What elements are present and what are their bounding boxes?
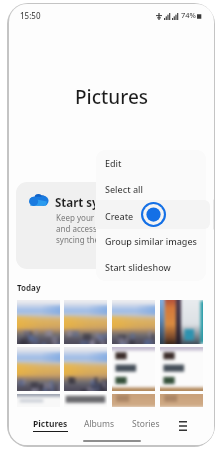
button[interactable]: Group similar images	[96, 228, 206, 254]
button[interactable]: Photo 8	[160, 347, 203, 391]
staticText: Start slideshow	[105, 261, 171, 273]
button[interactable]: Photo 2	[64, 300, 107, 344]
staticText: Pictures	[9, 84, 214, 110]
button[interactable]: Select all	[96, 176, 206, 202]
button[interactable]: Start syncing	[16, 182, 206, 269]
button[interactable]: Create	[95, 200, 210, 229]
staticText: Create	[105, 210, 134, 222]
button[interactable]: More options	[171, 414, 195, 438]
button[interactable]: Photo 6	[64, 347, 107, 391]
button[interactable]: Photo 12	[160, 394, 203, 438]
button[interactable]: Pictures	[27, 418, 73, 436]
staticText: Keep your memories safe and access them …	[56, 212, 169, 245]
button[interactable]: Edit	[96, 150, 206, 176]
staticText: 15:50	[20, 10, 41, 21]
button[interactable]: Photo 7	[112, 347, 155, 391]
staticText: Edit	[105, 157, 122, 169]
button[interactable]: Start slideshow	[96, 254, 206, 280]
button[interactable]: Photo 11	[112, 394, 155, 438]
staticText: Stories	[132, 418, 160, 430]
button[interactable]: Photo 10	[64, 394, 107, 438]
staticText: Albums	[84, 418, 115, 430]
button[interactable]: Create	[96, 202, 206, 228]
button[interactable]: Photo 1	[17, 300, 60, 344]
staticText: 74%	[181, 10, 196, 20]
staticText: Create	[105, 209, 134, 221]
button[interactable]: Stories	[126, 418, 165, 433]
button[interactable]: Albums	[79, 418, 119, 433]
staticText: Pictures	[33, 418, 68, 430]
button[interactable]: Photo 9	[17, 394, 60, 438]
button[interactable]: Photo 3	[112, 300, 155, 344]
staticText: Start syncing	[55, 195, 131, 211]
staticText: Group similar images	[105, 235, 197, 247]
staticText: Today	[17, 282, 41, 293]
staticText: Select all	[105, 183, 143, 195]
button[interactable]: Photo 4	[160, 300, 203, 344]
button[interactable]: Photo 5	[17, 347, 60, 391]
